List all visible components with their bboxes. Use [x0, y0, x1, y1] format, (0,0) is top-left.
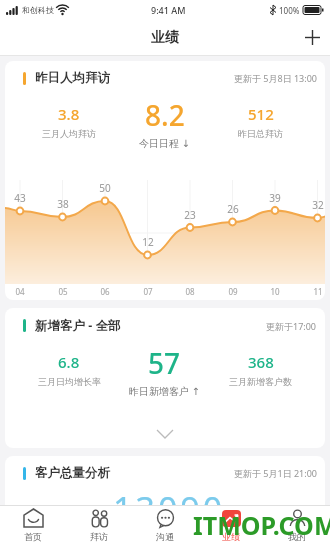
staticText: 8.2: [145, 96, 185, 134]
staticText: 业绩: [151, 29, 179, 47]
button[interactable]: 客户总量分析: [5, 456, 325, 550]
staticText: 更新于17:00: [266, 320, 317, 332]
staticText: 新增客户 - 全部: [35, 317, 121, 334]
button[interactable]: 新增客户 - 全部: [5, 308, 325, 448]
staticText: 26: [222, 202, 244, 216]
staticText: 39: [264, 191, 286, 205]
staticText: ITMOP.COM: [193, 508, 330, 542]
staticText: 11: [309, 286, 325, 297]
staticText: 100%: [279, 5, 300, 16]
button[interactable]: [5, 430, 325, 448]
staticText: 57: [148, 344, 181, 382]
staticText: 客户总量分析: [35, 465, 110, 481]
staticText: 12: [137, 235, 159, 249]
staticText: 08: [181, 286, 199, 297]
staticText: 三月日均增长率: [38, 376, 101, 387]
staticText: 512: [248, 104, 274, 124]
button[interactable]: 昨日人均拜访: [5, 61, 325, 300]
staticText: 06: [96, 286, 114, 297]
staticText: 和创科技: [22, 5, 54, 15]
staticText: 拜访: [90, 531, 108, 542]
staticText: 三月新增客户数: [229, 376, 292, 387]
staticText: 今日日程 ↓: [139, 136, 190, 150]
staticText: 首页: [24, 531, 42, 542]
staticText: 05: [54, 286, 72, 297]
staticText: 更新于 5月8日 13:00: [234, 72, 317, 84]
staticText: 三月人均拜访: [42, 128, 96, 139]
button[interactable]: 首页: [0, 505, 66, 550]
staticText: 50: [94, 181, 116, 195]
staticText: 3.8: [58, 104, 80, 124]
staticText: 昨日新增客户 ↑: [129, 384, 200, 398]
staticText: 38: [52, 197, 74, 211]
staticText: 9:41 AM: [151, 4, 186, 16]
staticText: 43: [9, 191, 31, 205]
staticText: 昨日人均拜访: [35, 70, 110, 86]
staticText: 09: [224, 286, 242, 297]
staticText: 23: [179, 208, 201, 222]
button[interactable]: 业绩: [198, 505, 264, 550]
button[interactable]: 我的: [264, 505, 330, 550]
staticText: 10: [266, 286, 284, 297]
staticText: 07: [139, 286, 157, 297]
staticText: 沟通: [156, 531, 174, 542]
staticText: 13090: [113, 486, 226, 532]
button[interactable]: 拜访: [66, 505, 132, 550]
staticText: 32: [307, 198, 325, 212]
staticText: 更新于 5月1日 21:00: [234, 467, 317, 479]
button[interactable]: 沟通: [132, 505, 198, 550]
staticText: 业绩: [222, 531, 240, 542]
staticText: 6.8: [58, 352, 80, 372]
staticText: 04: [11, 286, 29, 297]
staticText: 我的: [288, 531, 306, 542]
button[interactable]: [295, 20, 330, 55]
staticText: 368: [248, 352, 274, 372]
staticText: 昨日总拜访: [238, 128, 283, 139]
